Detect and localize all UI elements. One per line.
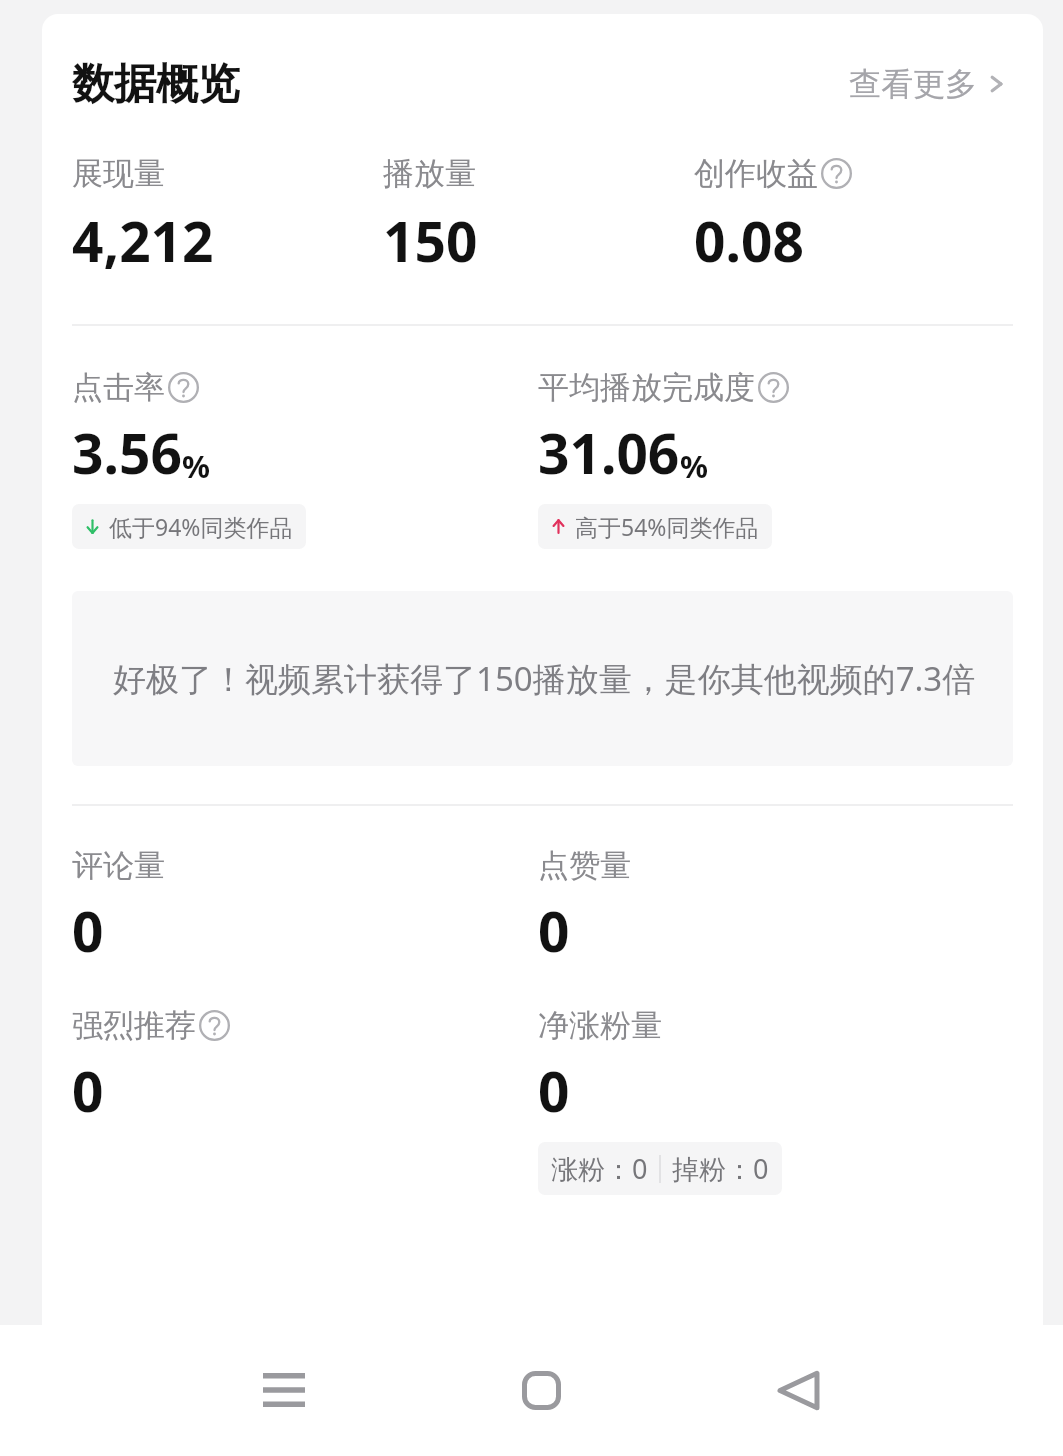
staticText: 150 [383, 203, 478, 278]
staticText: 31.06 [538, 415, 680, 490]
button[interactable]: 高于54%同类作品 [538, 504, 772, 549]
button[interactable]: 净涨粉量 [538, 1006, 1019, 1195]
staticText: % [680, 445, 708, 487]
staticText: 0 [72, 1053, 104, 1128]
button[interactable]: 平均播放完成度 [538, 368, 1019, 549]
button[interactable]: Back [733, 1348, 863, 1432]
button[interactable]: 展现量 [72, 154, 383, 278]
button[interactable]: 播放量 [383, 154, 694, 278]
staticText: 展现量 [72, 154, 165, 193]
staticText: 强烈推荐 [72, 1006, 196, 1045]
staticText: 净涨粉量 [538, 1006, 662, 1045]
button[interactable]: 评论量 [72, 846, 538, 968]
button[interactable]: 强烈推荐 [72, 1006, 538, 1128]
staticText: 播放量 [383, 154, 476, 193]
staticText: 3.56 [72, 415, 182, 490]
staticText: 好极了！视频累计获得了150播放量，是你其他视频的7.3倍 [113, 656, 976, 701]
staticText: 涨粉：0 [551, 1150, 648, 1187]
staticText: 0 [538, 893, 570, 968]
button[interactable]: 低于94%同类作品 [72, 504, 306, 549]
staticText: 创作收益 [694, 154, 818, 193]
button[interactable]: 好极了！视频累计获得了150播放量，是你其他视频的7.3倍 [72, 591, 1013, 766]
button[interactable]: Recent apps [219, 1348, 349, 1432]
button[interactable]: 点赞量 [538, 846, 1019, 968]
staticText: 数据概览 [72, 58, 240, 111]
button[interactable]: Home [476, 1348, 606, 1432]
button[interactable]: 查看更多 [843, 58, 1013, 110]
staticText: 4,212 [72, 203, 214, 278]
staticText: 平均播放完成度 [538, 368, 755, 407]
staticText: 点击率 [72, 368, 165, 407]
button[interactable]: 创作收益 [694, 154, 1019, 278]
staticText: 查看更多 [849, 64, 977, 104]
staticText: 0.08 [694, 203, 804, 278]
staticText: 点赞量 [538, 846, 631, 885]
staticText: % [182, 445, 210, 487]
button[interactable]: 涨粉：0 [538, 1142, 782, 1195]
button[interactable]: 点击率 [72, 368, 538, 549]
staticText: 低于94%同类作品 [109, 511, 293, 542]
staticText: 0 [72, 893, 104, 968]
staticText: 评论量 [72, 846, 165, 885]
staticText: 0 [538, 1053, 570, 1128]
staticText: 掉粉：0 [672, 1150, 769, 1187]
staticText: 高于54%同类作品 [575, 511, 759, 542]
